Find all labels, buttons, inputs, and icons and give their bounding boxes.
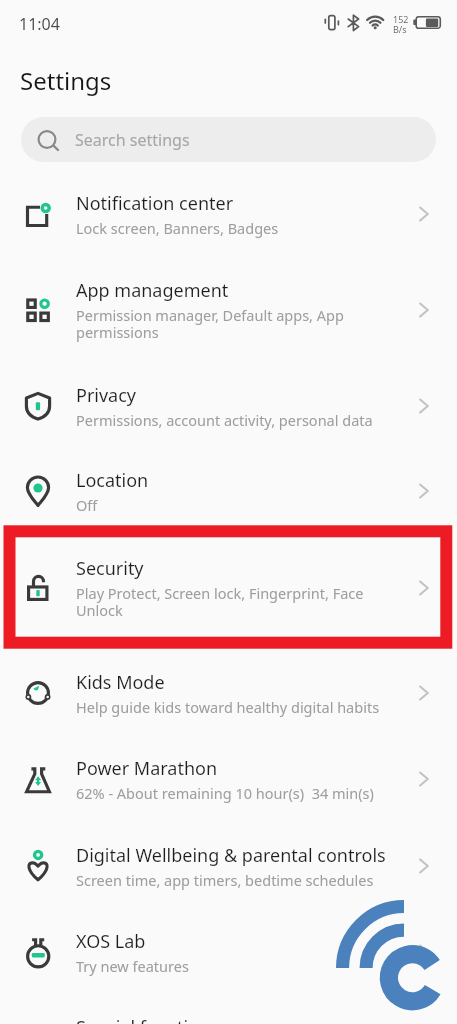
staticText: XOS Lab <box>76 929 146 954</box>
staticText: Special function <box>76 1015 211 1024</box>
button[interactable]: App management <box>0 262 457 350</box>
staticText: Privacy <box>76 383 137 408</box>
staticText: Digital Wellbeing & parental controls <box>76 843 386 868</box>
staticText: B/s <box>393 23 407 35</box>
staticText: permissions <box>76 322 159 342</box>
staticText: 11:04 <box>19 13 60 35</box>
button[interactable]: Power Marathon <box>0 740 457 811</box>
staticText: Permission manager, Default apps, App <box>76 305 344 325</box>
button[interactable]: Digital Wellbeing & parental controls <box>0 827 457 898</box>
staticText: Permissions, account activity, personal … <box>76 410 373 430</box>
staticText: 62% - About remaining 10 hour(s) 34 min(… <box>76 783 374 803</box>
staticText: Location <box>76 468 149 493</box>
staticText: Settings <box>20 64 112 97</box>
button[interactable]: Privacy <box>0 367 457 438</box>
staticText: Security <box>76 556 144 581</box>
staticText: Search settings <box>75 129 190 151</box>
staticText: App management <box>76 278 229 303</box>
staticText: Play Protect, Screen lock, Fingerprint, … <box>76 583 364 603</box>
button[interactable]: Search settings <box>21 117 436 162</box>
staticText: Power Marathon <box>76 756 218 781</box>
staticText: Off <box>76 495 98 515</box>
staticText: Screen time, app timers, bedtime schedul… <box>76 870 374 890</box>
button[interactable]: XOS Lab <box>0 913 457 984</box>
staticText: Lock screen, Banners, Badges <box>76 218 279 238</box>
staticText: 152 <box>393 13 409 25</box>
button[interactable]: Notification center <box>0 175 457 246</box>
staticText: Help guide kids toward healthy digital h… <box>76 697 380 717</box>
button[interactable]: Security <box>0 540 457 628</box>
button[interactable]: Kids Mode <box>0 654 457 725</box>
button[interactable]: Special function <box>0 999 457 1024</box>
staticText: Kids Mode <box>76 670 165 695</box>
staticText: Notification center <box>76 191 234 216</box>
staticText: Try new features <box>76 956 189 976</box>
button[interactable]: Location <box>0 452 457 523</box>
staticText: Unlock <box>76 600 123 620</box>
